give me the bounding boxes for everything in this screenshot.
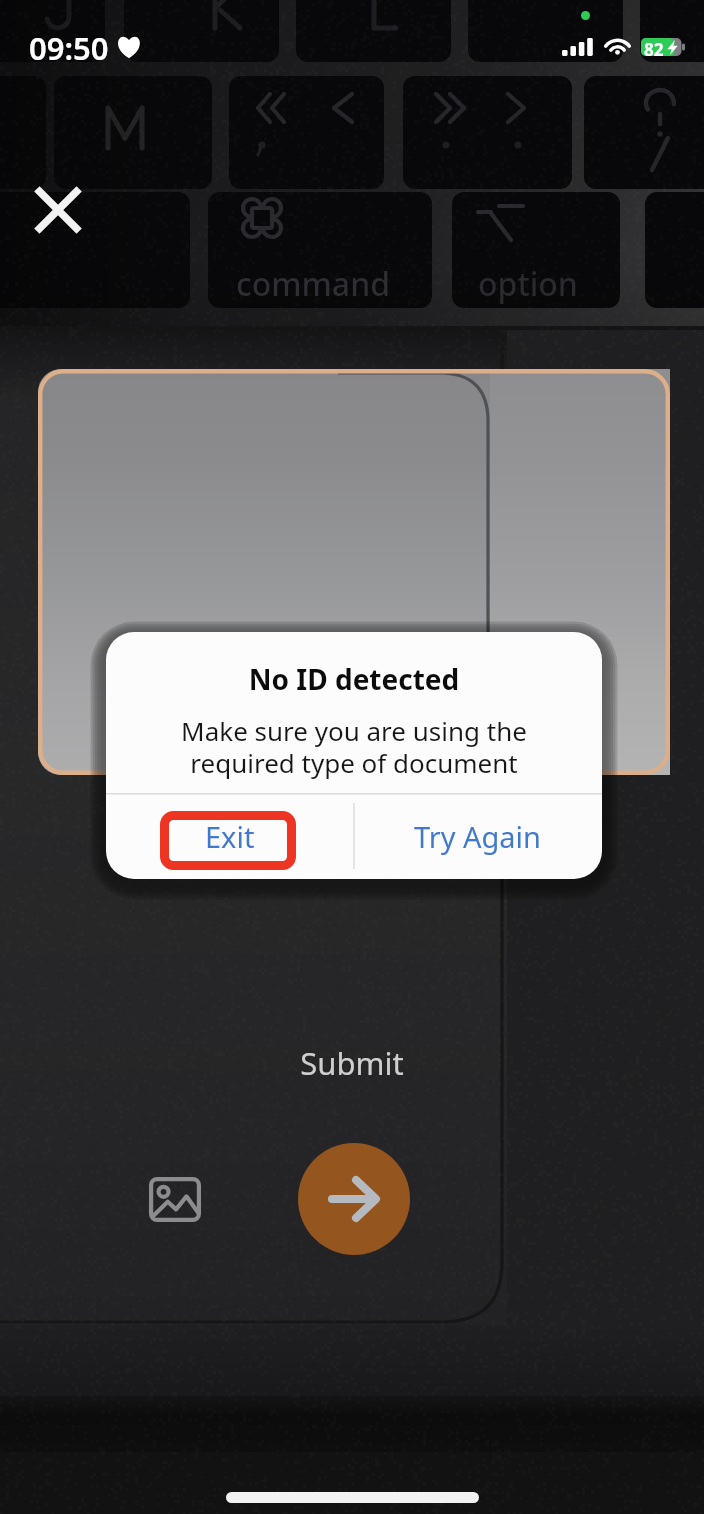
staticText: Exit bbox=[205, 817, 255, 856]
staticText: option bbox=[478, 262, 578, 306]
staticText: Try Again bbox=[414, 817, 542, 856]
button[interactable]: Try Again bbox=[354, 793, 602, 879]
button[interactable]: Close bbox=[22, 174, 94, 246]
staticText: Make sure you are using the required typ… bbox=[106, 713, 602, 781]
button[interactable]: Submit bbox=[298, 1143, 410, 1255]
staticText: 09:50 bbox=[29, 27, 109, 69]
staticText: Submit bbox=[0, 1042, 704, 1084]
staticText: 82 bbox=[644, 38, 664, 61]
button[interactable]: Exit bbox=[106, 793, 354, 879]
button[interactable]: Choose from gallery bbox=[135, 1159, 215, 1239]
staticText: No ID detected bbox=[106, 660, 602, 698]
staticText: command bbox=[236, 262, 391, 306]
